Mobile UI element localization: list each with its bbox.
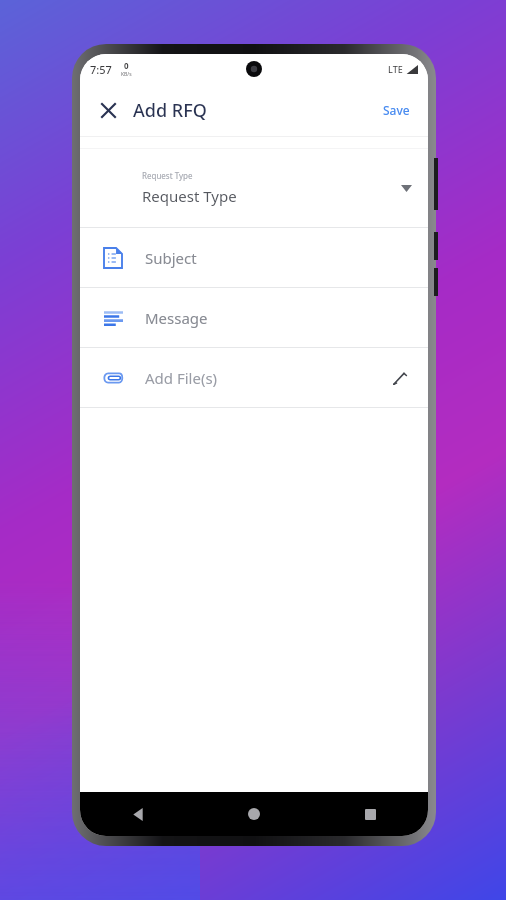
staticText: LTE	[388, 63, 403, 75]
staticText: Message	[145, 308, 208, 328]
staticText: 7:57	[90, 62, 112, 77]
button[interactable]: Request Type	[80, 149, 428, 227]
staticText: Add File(s)	[145, 368, 218, 388]
button[interactable]: Message	[80, 288, 428, 347]
staticText: KB/s	[121, 71, 132, 78]
staticText: Subject	[145, 248, 197, 268]
button[interactable]: Edit	[384, 363, 414, 393]
button[interactable]: Subject	[80, 228, 428, 287]
staticText: Save	[383, 102, 410, 118]
button[interactable]: Home	[196, 792, 312, 836]
staticText: Add RFQ	[133, 98, 207, 123]
button[interactable]: Recent apps	[312, 792, 428, 836]
button[interactable]: Close	[90, 92, 126, 128]
staticText: Request Type	[142, 170, 193, 181]
button[interactable]: Add File(s)	[80, 348, 428, 407]
button[interactable]: Save	[377, 96, 416, 124]
button[interactable]: Back	[80, 792, 196, 836]
staticText: Request Type	[142, 186, 237, 206]
staticText: 0	[124, 60, 129, 71]
